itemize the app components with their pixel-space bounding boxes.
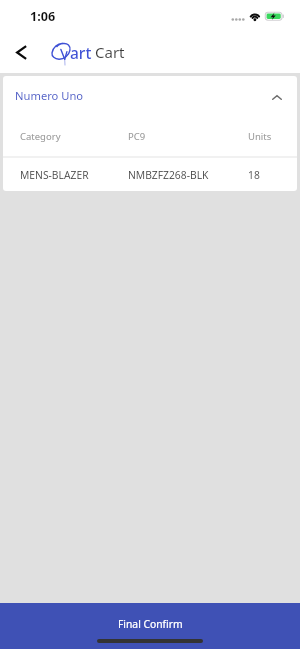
staticText: MENS-BLAZER bbox=[20, 168, 128, 182]
staticText: NMBZFZ268-BLK bbox=[128, 168, 248, 182]
staticText: Final Confirm bbox=[118, 617, 183, 631]
staticText: Category bbox=[20, 130, 128, 143]
button[interactable]: Numero Uno bbox=[3, 76, 297, 118]
staticText: PC9 bbox=[128, 130, 248, 143]
staticText: 1:06 bbox=[30, 8, 56, 25]
button[interactable]: Final Confirm bbox=[0, 603, 300, 649]
button[interactable]: MENS-BLAZER bbox=[3, 158, 297, 191]
button[interactable]: Back bbox=[8, 39, 34, 65]
staticText: Cart bbox=[95, 42, 125, 62]
staticText: Units bbox=[248, 130, 272, 143]
staticText: Numero Uno bbox=[15, 88, 84, 103]
staticText: art bbox=[70, 42, 92, 63]
staticText: 18 bbox=[248, 168, 260, 182]
